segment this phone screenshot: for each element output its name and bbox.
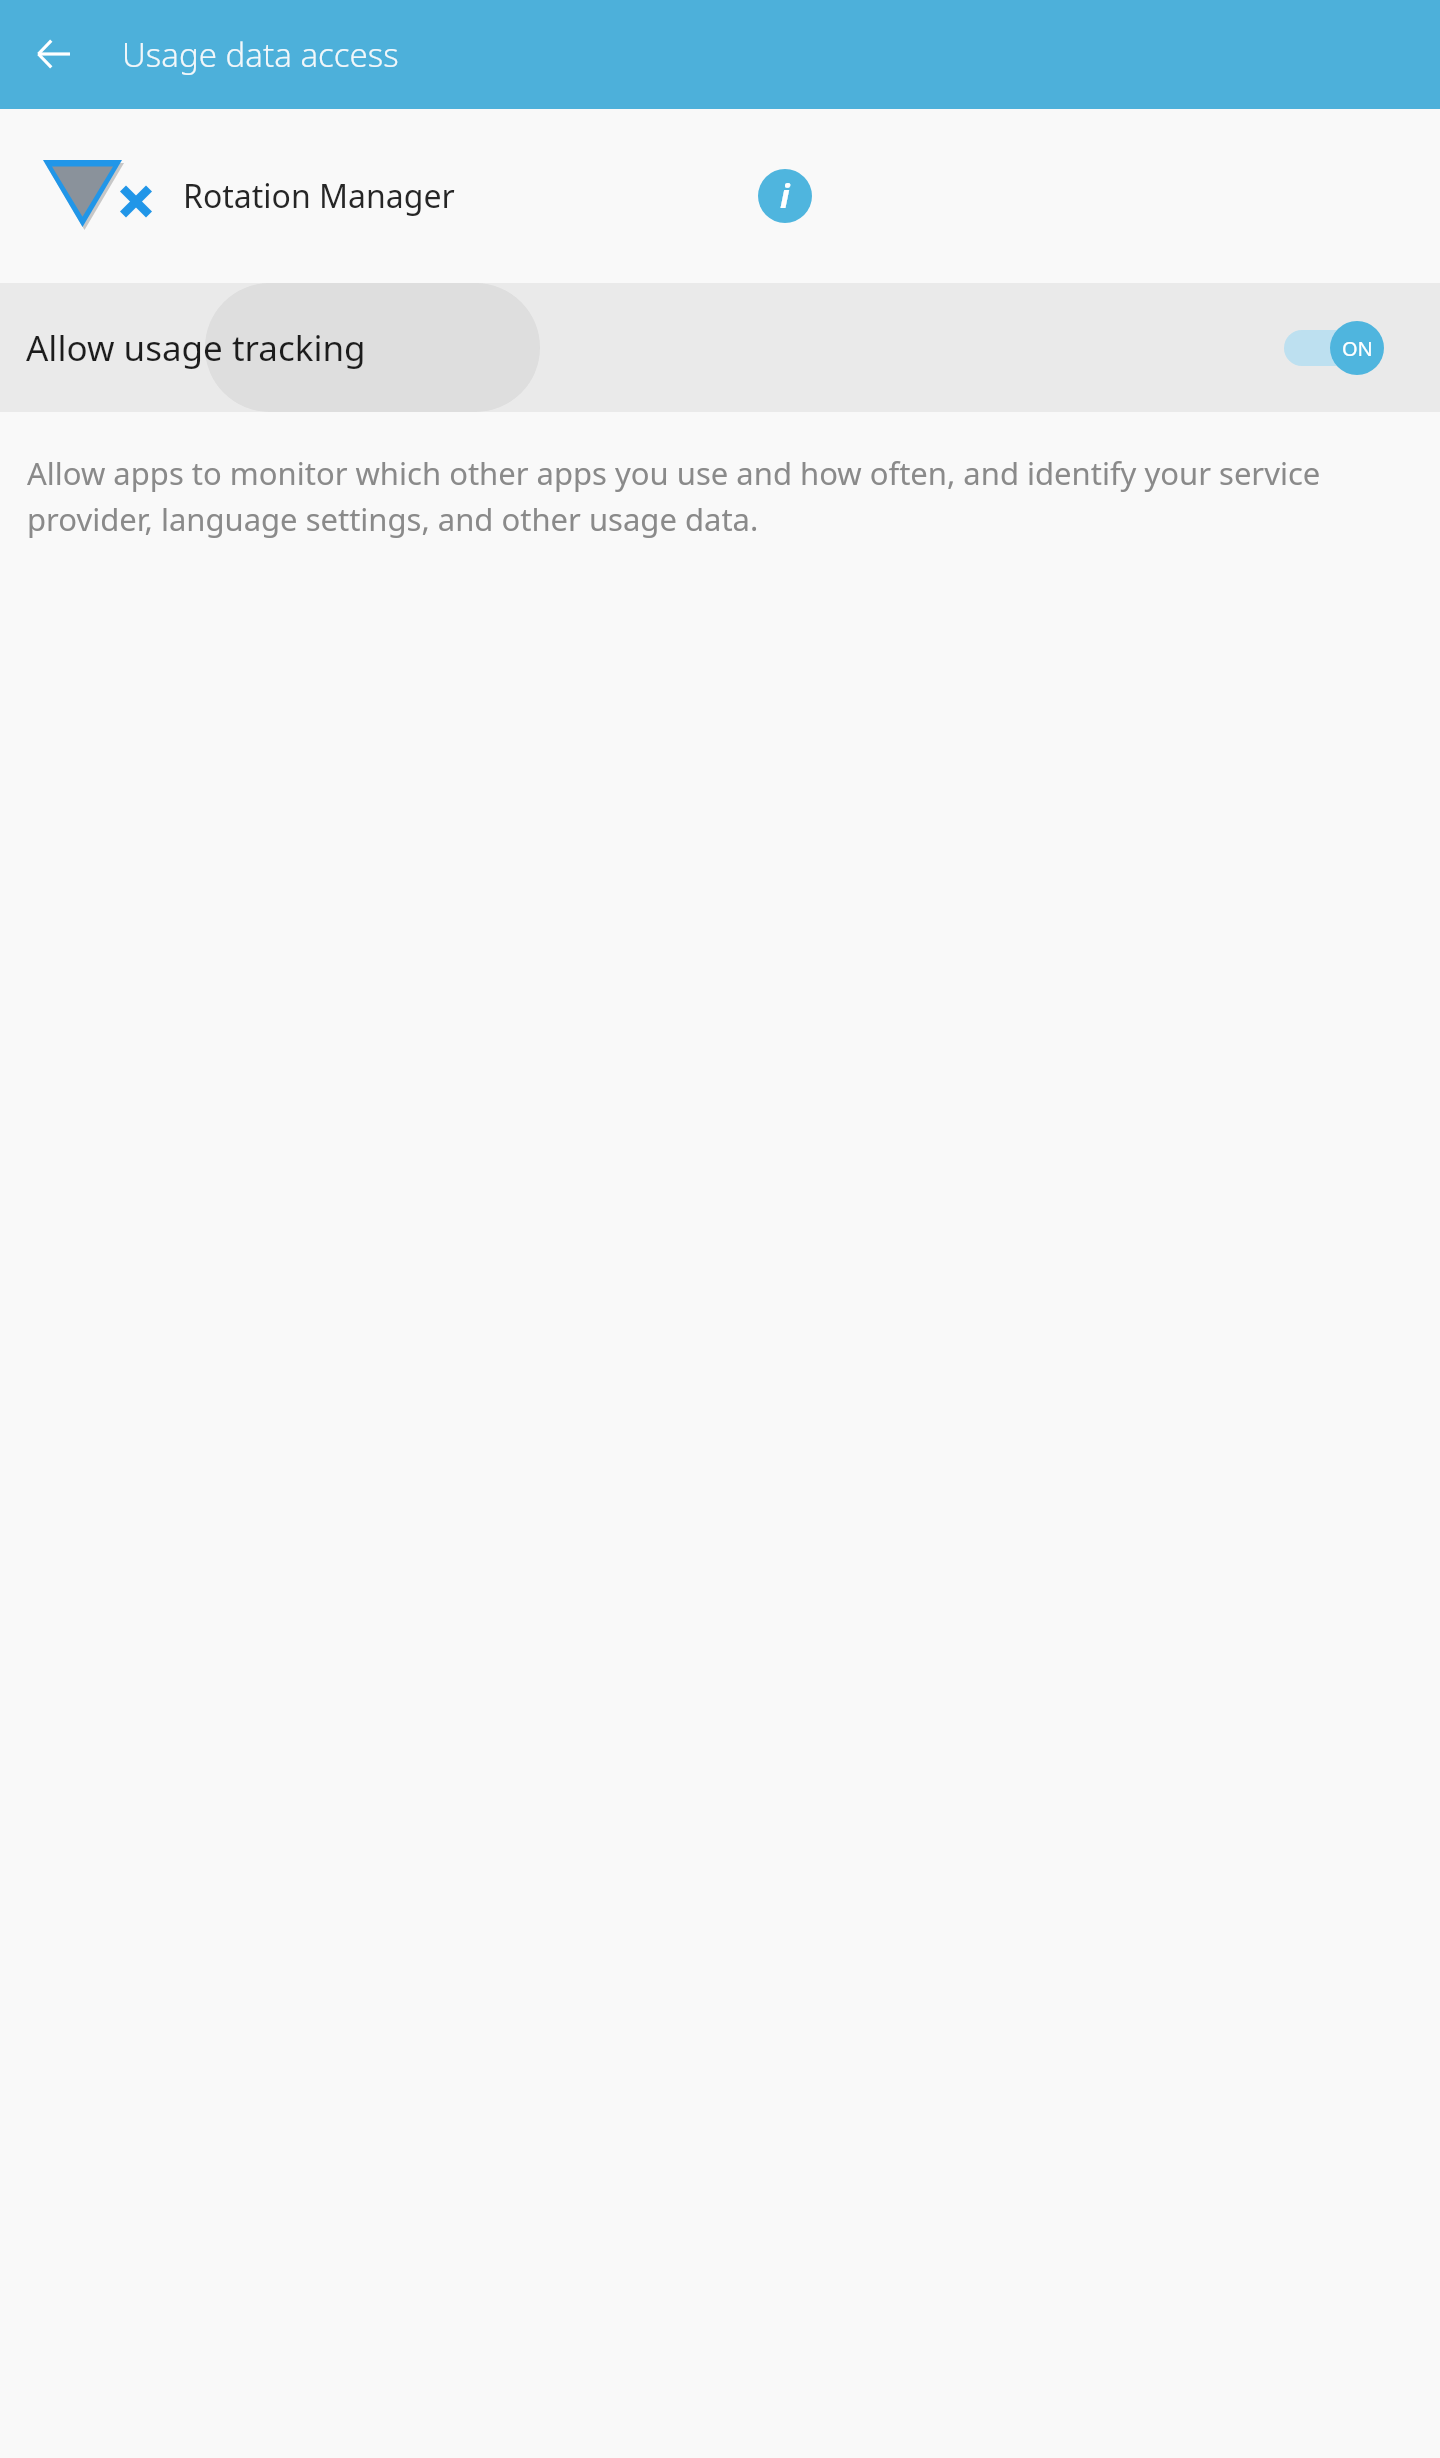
button[interactable]: Allow usage tracking toggle, on <box>1282 308 1402 388</box>
button[interactable]: Back <box>22 22 86 86</box>
staticText: Allow usage tracking <box>26 324 366 372</box>
staticText: Allow apps to monitor which other apps y… <box>27 452 1400 540</box>
staticText: ON <box>1342 335 1373 362</box>
staticText: Usage data access <box>122 32 399 77</box>
button[interactable]: Allow usage tracking <box>0 283 1440 412</box>
staticText: i <box>780 174 790 218</box>
staticText: Rotation Manager <box>183 174 455 218</box>
button[interactable]: App info <box>740 109 830 283</box>
button[interactable]: Rotation Manager <box>0 109 1440 283</box>
